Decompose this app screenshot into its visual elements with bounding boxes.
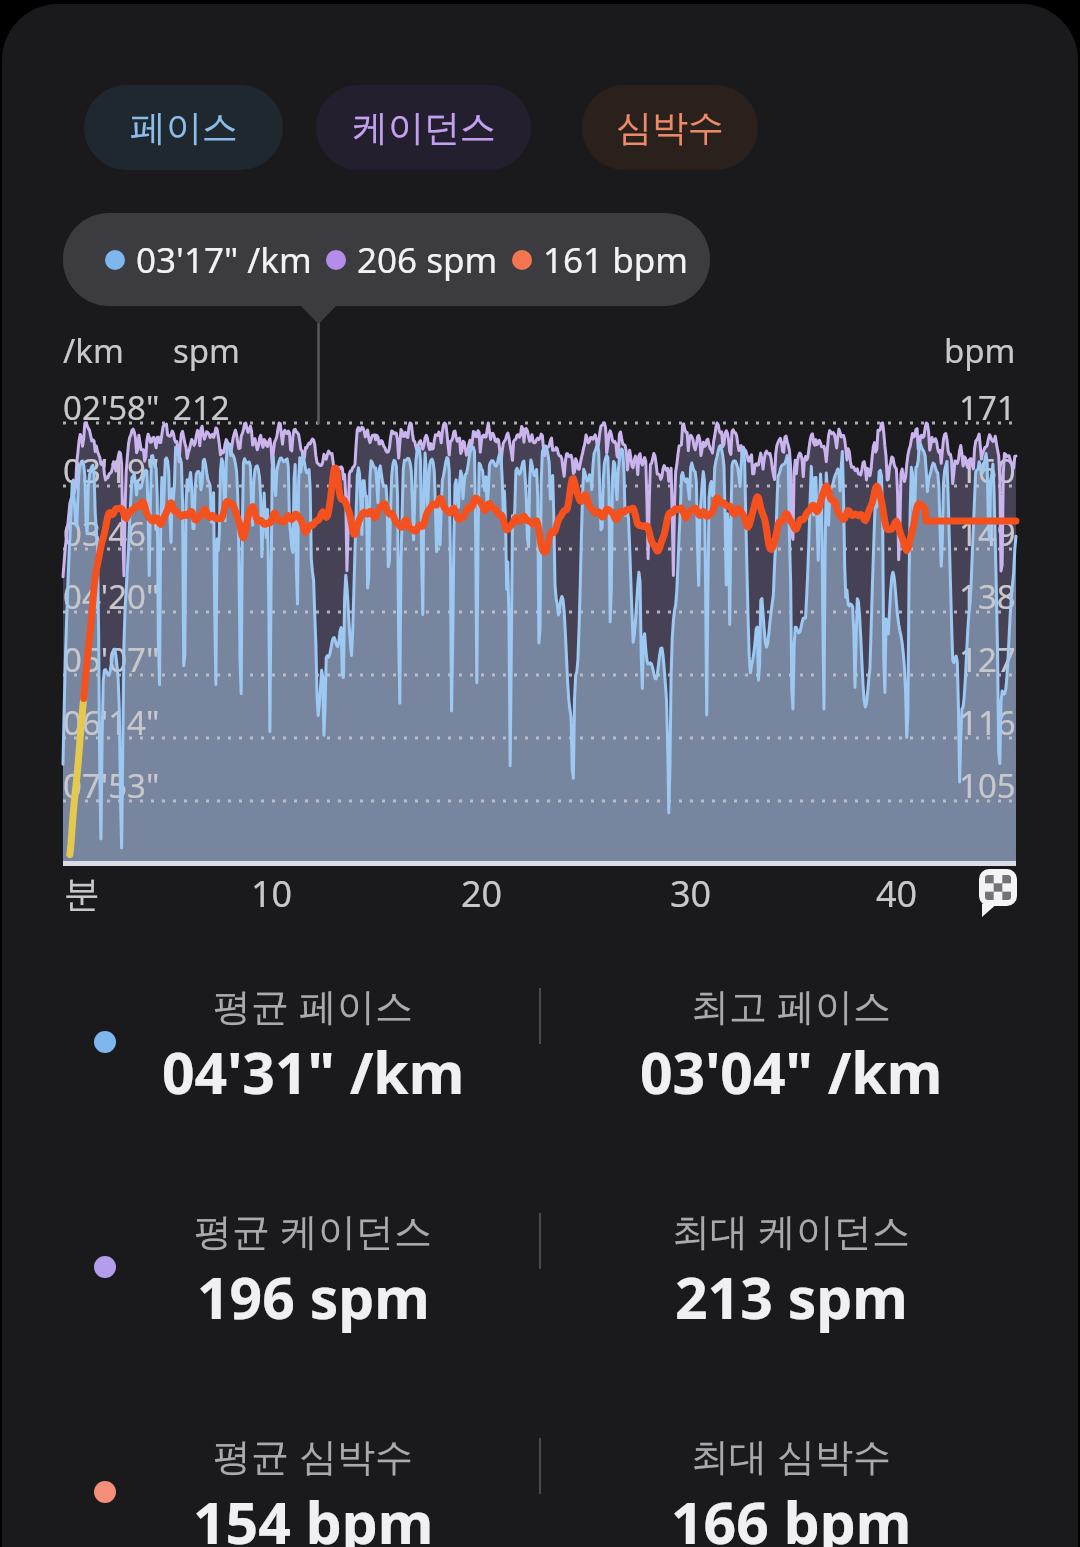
staticText: 페이스: [130, 105, 238, 150]
staticText: 160: [959, 448, 1016, 493]
staticText: 심박수: [616, 105, 724, 150]
button[interactable]: 심박수: [582, 85, 758, 170]
staticText: 06'14": [63, 700, 160, 745]
staticText: 03'04" /km: [640, 1033, 943, 1111]
staticText: 138: [959, 574, 1016, 619]
staticText: 171: [959, 385, 1016, 430]
staticText: 40: [876, 869, 918, 918]
staticText: 04'20": [63, 574, 160, 619]
button[interactable]: 케이던스: [316, 85, 531, 170]
staticText: 04'31" /km: [162, 1033, 465, 1111]
staticText: 149: [959, 511, 1016, 556]
staticText: 116: [959, 700, 1016, 745]
staticText: 최대 심박수: [691, 1429, 891, 1481]
staticText: 02'58": [63, 385, 160, 430]
staticText: 03'19": [63, 448, 160, 493]
staticText: 161 bpm: [543, 236, 688, 284]
staticText: 30: [670, 869, 712, 918]
staticText: 03'17" /km: [136, 236, 312, 284]
staticText: 154 bpm: [193, 1483, 434, 1547]
staticText: 20: [461, 869, 503, 918]
button[interactable]: 페이스: [84, 85, 283, 170]
staticText: 평균 페이스: [213, 979, 413, 1031]
staticText: 최고 페이스: [691, 979, 891, 1031]
staticText: 최대 케이던스: [672, 1204, 910, 1256]
staticText: 166 bpm: [671, 1483, 912, 1547]
staticText: 10: [251, 869, 293, 918]
staticText: 105: [959, 763, 1016, 808]
staticText: 213 spm: [675, 1258, 908, 1336]
staticText: spm: [173, 328, 240, 373]
staticText: 05'07": [63, 637, 160, 682]
staticText: 분: [64, 871, 100, 916]
staticText: 07'53": [63, 763, 160, 808]
staticText: 206 spm: [357, 236, 498, 284]
staticText: 212: [173, 385, 230, 430]
staticText: 평균 케이던스: [194, 1204, 432, 1256]
staticText: 196 spm: [197, 1258, 430, 1336]
staticText: 케이던스: [352, 105, 496, 150]
staticText: /km: [63, 328, 124, 373]
staticText: 03'46": [63, 511, 160, 556]
staticText: 평균 심박수: [213, 1429, 413, 1481]
staticText: 127: [959, 637, 1016, 682]
staticText: bpm: [944, 328, 1016, 373]
